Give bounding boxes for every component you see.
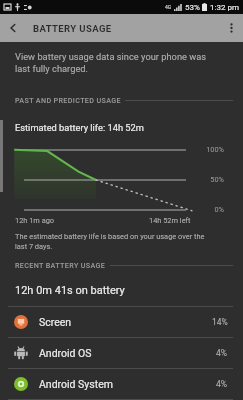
- staticText: 14%: [212, 317, 228, 327]
- button[interactable]: Android OS: [0, 338, 243, 368]
- staticText: 12h 0m 41s on battery: [15, 284, 125, 297]
- staticText: 4G: [165, 4, 172, 10]
- button[interactable]: Android System: [0, 369, 243, 399]
- staticText: Screen: [39, 316, 72, 328]
- staticText: 0%: [214, 205, 224, 214]
- button[interactable]: Screen: [0, 307, 243, 337]
- staticText: The estimated battery life is based on y…: [15, 232, 205, 251]
- staticText: PAST AND PREDICTED USAGE: [15, 96, 121, 104]
- staticText: Android System: [39, 378, 113, 390]
- staticText: View battery usage data since your phone…: [15, 51, 207, 75]
- staticText: 1:32 pm: [210, 3, 239, 12]
- button[interactable]: Back: [0, 14, 26, 42]
- staticText: Android OS: [39, 347, 92, 359]
- staticText: Estimated battery life: 14h 52m: [15, 122, 144, 133]
- staticText: 53%: [185, 3, 200, 12]
- staticText: 50%: [210, 175, 224, 184]
- button[interactable]: More options: [219, 14, 243, 42]
- staticText: 14h 52m left: [149, 216, 191, 225]
- staticText: RECENT BATTERY USAGE: [15, 261, 106, 269]
- staticText: 100%: [206, 145, 224, 154]
- staticText: 4%: [216, 379, 228, 389]
- staticText: 12h 1m ago: [15, 216, 55, 225]
- staticText: BATTERY USAGE: [33, 23, 112, 34]
- staticText: 4%: [216, 348, 228, 358]
